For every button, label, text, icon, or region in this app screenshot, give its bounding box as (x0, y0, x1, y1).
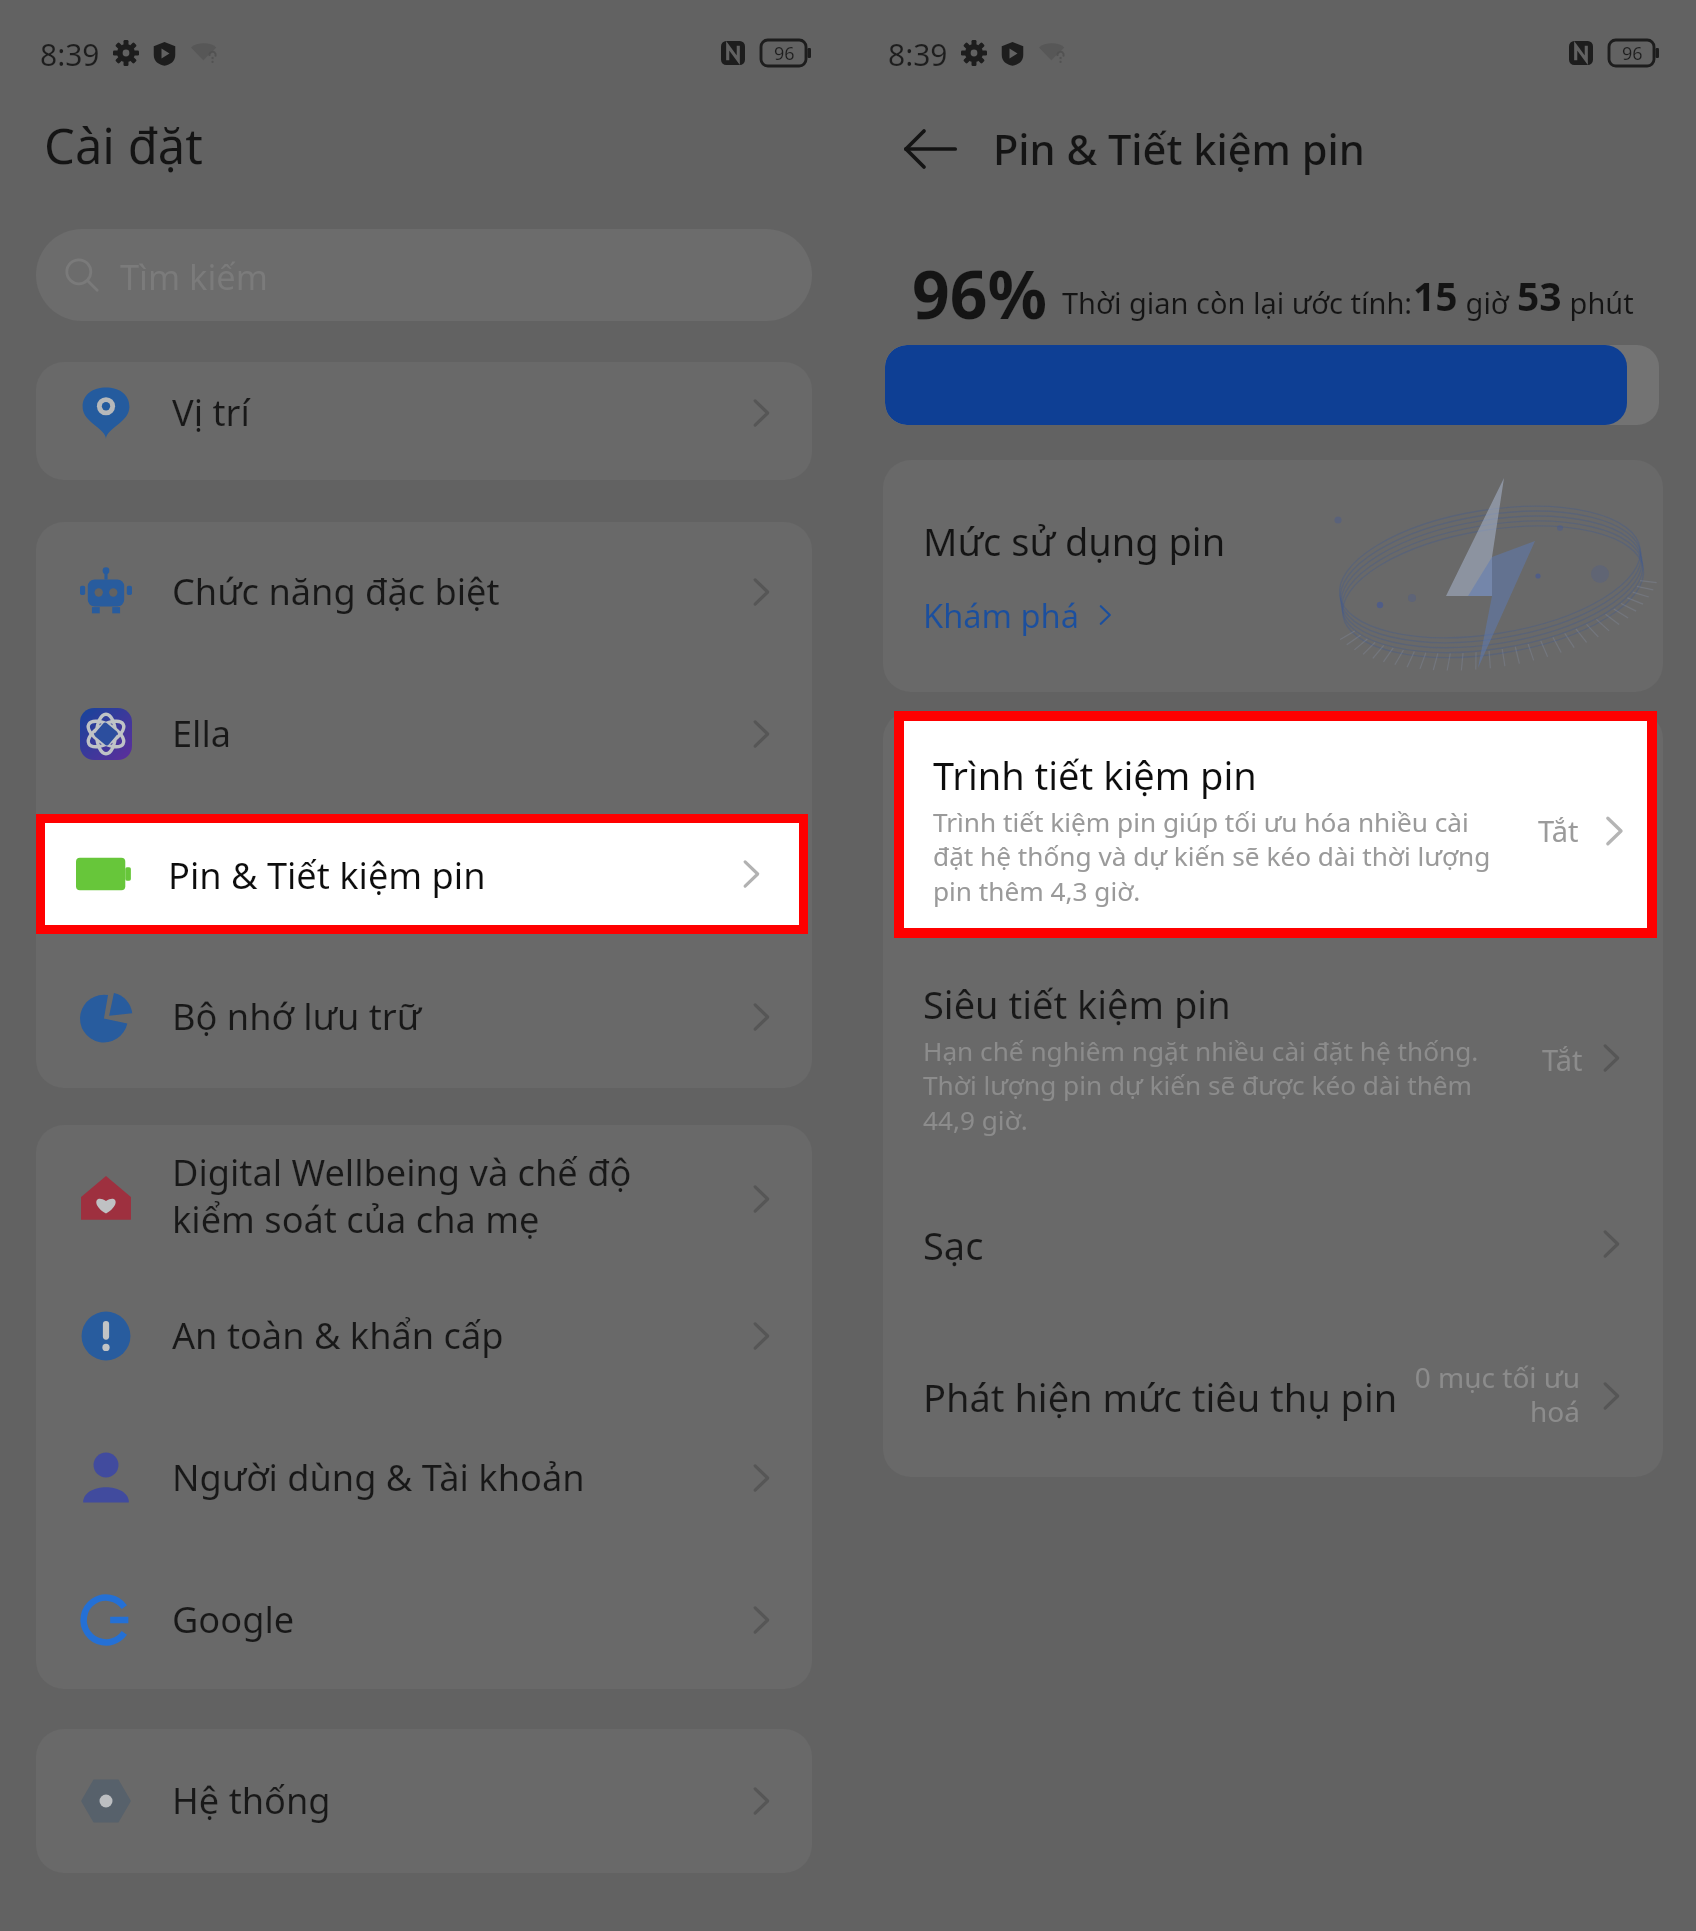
staticText: Pin & Tiết kiệm pin (993, 121, 1365, 178)
button[interactable]: Phát hiện mức tiêu thụ pin (883, 1331, 1663, 1461)
button[interactable]: Bộ nhớ lưu trữ (36, 947, 812, 1087)
button[interactable]: Digital Wellbeing và chế độ kiểm soát củ… (36, 1114, 812, 1284)
staticText: Người dùng & Tài khoản (172, 1452, 585, 1501)
button[interactable]: Sạc (883, 1179, 1663, 1309)
staticText: Tìm kiếm (120, 253, 268, 300)
staticText: Ella (172, 708, 232, 757)
staticText: 96 (774, 41, 795, 66)
button[interactable]: Mức sử dụng pin (883, 460, 1663, 692)
staticText: Sạc (923, 1219, 984, 1271)
staticText: Vị trí (172, 387, 250, 436)
staticText: Phát hiện mức tiêu thụ pin (923, 1371, 1398, 1423)
button[interactable]: Siêu tiết kiệm pin (883, 950, 1663, 1150)
staticText: Cài đặt (44, 112, 203, 179)
staticText: 0 mục tối ưu hoá (1381, 1358, 1580, 1431)
button[interactable]: Pin & Tiết kiệm pin (36, 805, 812, 945)
staticText: Tắt (1538, 811, 1579, 850)
staticText: Thời gian còn lại ước tính: (1062, 283, 1413, 322)
staticText: Hệ thống (172, 1775, 331, 1824)
staticText: Tắt (1542, 1040, 1583, 1079)
button[interactable]: Trình tiết kiệm pin (904, 721, 1647, 928)
staticText: 96% (912, 248, 1048, 328)
staticText: Pin & Tiết kiệm pin (172, 849, 490, 898)
button[interactable]: Google (36, 1550, 812, 1690)
button[interactable]: Back (900, 119, 960, 179)
staticText: Siêu tiết kiệm pin (923, 978, 1231, 1030)
staticText: Trình tiết kiệm pin giúp tối ưu hóa nhiề… (933, 804, 1491, 909)
staticText: Mức sử dụng pin (923, 515, 1226, 567)
staticText: giờ (1458, 283, 1517, 322)
button[interactable]: Vị trí (36, 343, 812, 483)
staticText: An toàn & khẩn cấp (172, 1310, 504, 1359)
button[interactable]: An toàn & khẩn cấp (36, 1266, 812, 1406)
staticText: Digital Wellbeing và chế độ kiểm soát củ… (172, 1147, 632, 1244)
staticText: phút (1562, 283, 1634, 322)
staticText: Trình tiết kiệm pin (933, 749, 1257, 801)
button[interactable]: Chức năng đặc biệt (36, 522, 812, 662)
button[interactable]: Hệ thống (36, 1731, 812, 1871)
staticText: Pin & Tiết kiệm pin (168, 850, 486, 899)
staticText: 15 (1413, 269, 1458, 322)
button[interactable]: Pin & Tiết kiệm pin (45, 823, 799, 925)
staticText: 8:39 (40, 34, 100, 72)
staticText: 96 (1622, 41, 1643, 66)
staticText: Hạn chế nghiêm ngặt nhiều cài đặt hệ thố… (923, 1033, 1479, 1138)
staticText: Khám phá (923, 593, 1080, 637)
staticText: 53 (1517, 269, 1562, 322)
staticText: Google (172, 1594, 295, 1643)
staticText: Bộ nhớ lưu trữ (172, 991, 422, 1040)
button[interactable]: Ella (36, 664, 812, 804)
button[interactable]: Người dùng & Tài khoản (36, 1408, 812, 1548)
staticText: 8:39 (888, 34, 948, 72)
staticText: Chức năng đặc biệt (172, 566, 500, 615)
